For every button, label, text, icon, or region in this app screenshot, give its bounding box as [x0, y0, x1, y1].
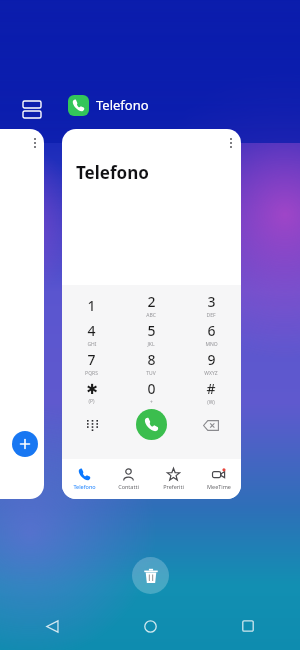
button[interactable]: Split screen — [18, 95, 46, 123]
button[interactable]: 7 — [62, 349, 121, 378]
staticText: 9 — [207, 350, 216, 369]
staticText: # — [206, 379, 216, 398]
button[interactable]: Preferiti — [151, 459, 196, 499]
staticText: ✱ — [86, 381, 98, 397]
button[interactable]: 3 — [181, 291, 241, 320]
button[interactable]: 4 — [62, 320, 121, 349]
staticText: Telefono — [76, 161, 149, 184]
staticText: 8 — [147, 350, 156, 369]
staticText: 4 — [87, 321, 96, 340]
staticText: Contatti — [118, 483, 139, 490]
staticText: 6 — [207, 321, 216, 340]
staticText: MeeTime — [207, 483, 231, 490]
staticText: 7 — [87, 350, 96, 369]
staticText: TUV — [146, 370, 156, 377]
button[interactable]: Home — [130, 606, 170, 646]
button[interactable]: 9 — [181, 349, 241, 378]
button[interactable]: 5 — [121, 320, 181, 349]
staticText: JKL — [147, 341, 155, 348]
staticText: (W) — [207, 399, 215, 406]
staticText: 1 — [87, 296, 96, 315]
button[interactable]: 6 — [181, 320, 241, 349]
staticText: WXYZ — [204, 370, 218, 377]
button[interactable]: ✱ — [62, 378, 121, 407]
staticText: + — [150, 399, 153, 406]
staticText: MNO — [205, 341, 218, 348]
staticText: ABC — [146, 312, 156, 319]
staticText: (P) — [88, 398, 95, 405]
button[interactable]: 8 — [121, 349, 181, 378]
button[interactable]: 1 — [62, 291, 121, 320]
staticText: 2 — [147, 292, 156, 311]
staticText: PQRS — [85, 370, 98, 377]
staticText: Telefono — [73, 483, 96, 490]
button[interactable]: Add — [12, 431, 38, 457]
button[interactable]: 0 — [121, 378, 181, 407]
staticText: DEF — [206, 312, 216, 319]
button[interactable]: MeeTime — [196, 459, 241, 499]
button[interactable]: Telefono — [62, 129, 241, 499]
button[interactable]: Contatti — [106, 459, 151, 499]
button[interactable]: Clear all — [132, 557, 169, 594]
staticText: 0 — [147, 379, 156, 398]
button[interactable]: Telefono — [68, 93, 149, 117]
staticText: Telefono — [96, 96, 149, 114]
button[interactable]: Keypad — [77, 410, 107, 440]
button[interactable]: Back — [32, 606, 72, 646]
button[interactable]: Call — [136, 409, 167, 440]
staticText: GHI — [87, 341, 97, 348]
button[interactable]: 2 — [121, 291, 181, 320]
staticText: 3 — [207, 292, 216, 311]
button[interactable]: Recents — [228, 606, 268, 646]
button[interactable]: Delete — [196, 410, 226, 440]
button[interactable]: Previous app — [0, 129, 44, 499]
staticText: 5 — [147, 321, 156, 340]
button[interactable]: # — [181, 378, 241, 407]
button[interactable]: Telefono — [62, 459, 106, 499]
staticText: Preferiti — [163, 483, 184, 490]
